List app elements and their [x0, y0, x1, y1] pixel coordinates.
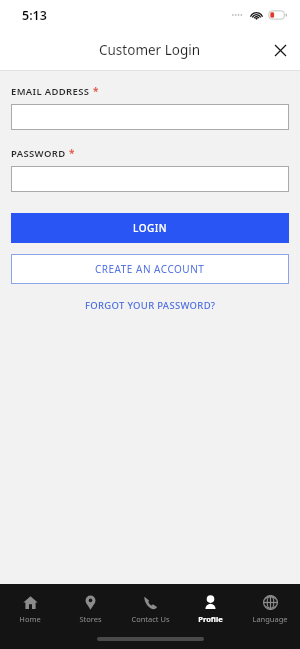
staticText: Contact Us — [131, 614, 170, 624]
staticText: LOGIN — [133, 221, 168, 235]
staticText: Home — [19, 614, 41, 624]
staticText: FORGOT YOUR PASSWORD? — [85, 299, 216, 312]
staticText: Customer Login — [99, 41, 201, 59]
staticText: Profile — [198, 614, 223, 624]
button[interactable]: Language — [240, 589, 300, 624]
button[interactable]: FORGOT YOUR PASSWORD? — [11, 299, 289, 312]
staticText: Language — [252, 614, 288, 624]
button[interactable] — [11, 104, 289, 130]
staticText: * — [69, 146, 75, 160]
button[interactable]: LOGIN — [11, 213, 289, 243]
staticText: CREATE AN ACCOUNT — [95, 262, 205, 276]
button[interactable]: Stores — [60, 589, 120, 624]
staticText: * — [93, 84, 99, 98]
button[interactable]: Home — [0, 589, 60, 624]
button[interactable]: Contact Us — [120, 589, 180, 624]
staticText: 5:13 — [22, 7, 47, 24]
button[interactable]: Close — [260, 30, 300, 70]
button[interactable] — [11, 166, 289, 192]
staticText: PASSWORD — [11, 147, 66, 160]
button[interactable]: CREATE AN ACCOUNT — [11, 254, 289, 284]
button[interactable]: Profile — [180, 589, 240, 624]
staticText: EMAIL ADDRESS — [11, 85, 90, 98]
staticText: Stores — [79, 614, 102, 624]
